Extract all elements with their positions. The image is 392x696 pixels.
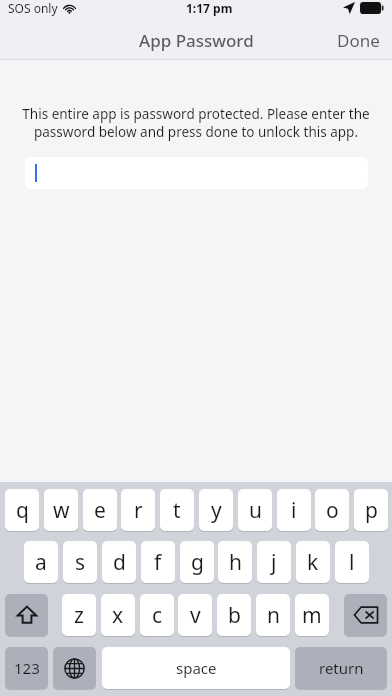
staticText: t bbox=[173, 496, 181, 525]
button[interactable]: b bbox=[217, 594, 251, 636]
button[interactable]: q bbox=[5, 489, 39, 531]
staticText: This entire app is password protected. P… bbox=[20, 105, 372, 141]
staticText: 1:17 pm bbox=[186, 0, 233, 16]
button[interactable]: r bbox=[121, 489, 155, 531]
button[interactable]: d bbox=[102, 541, 136, 583]
staticText: o bbox=[326, 496, 339, 525]
staticText: s bbox=[75, 548, 86, 577]
staticText: r bbox=[134, 496, 143, 525]
button[interactable]: a bbox=[24, 541, 58, 583]
staticText: g bbox=[191, 548, 204, 577]
button[interactable]: Shift bbox=[5, 594, 48, 636]
button[interactable]: Change keyboard bbox=[53, 647, 96, 689]
button[interactable]: x bbox=[101, 594, 135, 636]
staticText: e bbox=[94, 496, 106, 525]
staticText: b bbox=[228, 601, 241, 630]
staticText: f bbox=[154, 548, 162, 577]
button[interactable]: Done bbox=[337, 29, 380, 52]
button[interactable]: h bbox=[218, 541, 252, 583]
staticText: w bbox=[53, 496, 70, 525]
button[interactable]: o bbox=[315, 489, 349, 531]
staticText: q bbox=[16, 496, 29, 525]
button[interactable]: z bbox=[62, 594, 96, 636]
staticText: p bbox=[365, 496, 378, 525]
staticText: SOS only bbox=[8, 0, 58, 16]
staticText: j bbox=[271, 548, 277, 577]
button[interactable]: s bbox=[63, 541, 97, 583]
staticText: u bbox=[249, 496, 262, 525]
button[interactable]: Backspace bbox=[344, 594, 387, 636]
button[interactable]: j bbox=[257, 541, 291, 583]
staticText: c bbox=[152, 601, 163, 630]
staticText: n bbox=[267, 601, 280, 630]
button[interactable]: v bbox=[178, 594, 212, 636]
button[interactable]: space bbox=[102, 647, 290, 689]
button[interactable]: k bbox=[296, 541, 330, 583]
button[interactable]: e bbox=[83, 489, 117, 531]
button[interactable]: c bbox=[140, 594, 174, 636]
button[interactable]: return bbox=[295, 647, 387, 689]
button[interactable]: w bbox=[44, 489, 78, 531]
button[interactable]: 123 bbox=[5, 647, 48, 689]
staticText: App Password bbox=[139, 29, 254, 52]
staticText: d bbox=[113, 548, 126, 577]
staticText: Done bbox=[337, 29, 380, 52]
button[interactable]: n bbox=[256, 594, 290, 636]
staticText: y bbox=[211, 496, 222, 525]
button[interactable]: i bbox=[277, 489, 311, 531]
button[interactable]: p bbox=[354, 489, 388, 531]
button[interactable] bbox=[25, 157, 368, 189]
staticText: a bbox=[35, 548, 47, 577]
staticText: v bbox=[190, 601, 201, 630]
staticText: i bbox=[291, 496, 297, 525]
button[interactable]: u bbox=[238, 489, 272, 531]
staticText: h bbox=[229, 548, 242, 577]
staticText: m bbox=[302, 601, 322, 630]
staticText: x bbox=[112, 601, 124, 630]
button[interactable]: l bbox=[335, 541, 369, 583]
button[interactable]: g bbox=[180, 541, 214, 583]
button[interactable]: f bbox=[141, 541, 175, 583]
button[interactable]: y bbox=[199, 489, 233, 531]
staticText: l bbox=[349, 548, 355, 577]
staticText: k bbox=[307, 548, 319, 577]
staticText: 123 bbox=[14, 658, 40, 678]
button[interactable]: t bbox=[160, 489, 194, 531]
staticText: return bbox=[319, 658, 364, 678]
button[interactable]: m bbox=[295, 594, 329, 636]
staticText: z bbox=[74, 601, 84, 630]
staticText: space bbox=[176, 658, 217, 678]
